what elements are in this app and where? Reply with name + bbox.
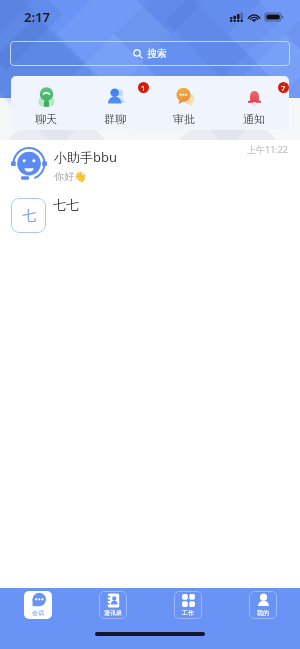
button[interactable]: 会话 xyxy=(0,591,75,619)
staticText: 群聊 xyxy=(104,112,126,126)
button[interactable]: 七 xyxy=(0,190,300,240)
button[interactable]: 我的 xyxy=(225,591,300,619)
staticText: 搜索 xyxy=(147,47,167,60)
staticText: 你好👋 xyxy=(54,170,87,183)
button[interactable]: 通讯录 xyxy=(75,591,150,619)
button[interactable]: 小助手bbu xyxy=(0,140,300,190)
staticText: 7 xyxy=(281,83,286,93)
staticText: 七 xyxy=(22,207,36,225)
staticText: 通讯录 xyxy=(104,609,122,617)
staticText: 上午11:22 xyxy=(247,143,289,155)
staticText: 聊天 xyxy=(35,112,57,126)
button[interactable]: 搜索 xyxy=(10,41,290,66)
button[interactable]: 聊天 xyxy=(11,76,80,130)
staticText: 工作 xyxy=(182,609,194,617)
button[interactable]: 群聊 xyxy=(80,76,149,130)
button[interactable]: 通知 xyxy=(219,76,289,130)
staticText: 2:17 xyxy=(24,8,50,26)
button[interactable]: 工作 xyxy=(150,591,225,619)
staticText: 我的 xyxy=(257,609,269,617)
staticText: 审批 xyxy=(173,112,195,126)
staticText: 小助手bbu xyxy=(54,148,118,166)
staticText: 1 xyxy=(141,83,146,93)
staticText: 通知 xyxy=(243,112,265,126)
staticText: 七七 xyxy=(53,197,79,213)
button[interactable]: 审批 xyxy=(149,76,219,130)
staticText: 会话 xyxy=(32,609,44,617)
